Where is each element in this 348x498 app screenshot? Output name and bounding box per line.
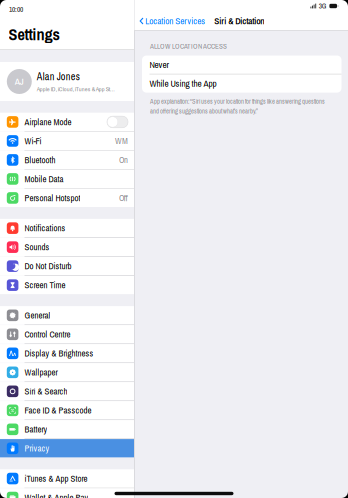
- staticText: Display & Brightness: [24, 347, 93, 359]
- button[interactable]: While Using the App: [142, 74, 341, 93]
- staticText: On: [119, 154, 128, 166]
- staticText: Sounds: [24, 241, 49, 253]
- button[interactable]: Face ID & Passcode: [0, 401, 134, 420]
- staticText: Face ID & Passcode: [24, 404, 91, 416]
- button[interactable]: Screen Time: [0, 276, 134, 294]
- staticText: Alan Jones: [37, 70, 80, 83]
- staticText: 10:00: [9, 5, 23, 14]
- staticText: Bluetooth: [24, 154, 55, 166]
- button[interactable]: iTunes & App Store: [0, 469, 134, 488]
- staticText: Apple ID, iCloud, iTunes & App St…: [37, 85, 115, 93]
- button[interactable]: Wallpaper: [0, 363, 134, 382]
- staticText: Siri & Search: [24, 385, 67, 397]
- button[interactable]: AJ: [0, 62, 134, 101]
- button[interactable]: Mobile Data: [0, 170, 134, 188]
- staticText: 3G: [319, 1, 327, 11]
- button[interactable]: Notifications: [0, 219, 134, 237]
- staticText: ALLOW LOCATION ACCESS: [150, 41, 227, 51]
- button[interactable]: Sounds: [0, 238, 134, 256]
- staticText: Airplane Mode: [24, 116, 71, 128]
- staticText: Location Services: [145, 15, 205, 27]
- button[interactable]: Battery: [0, 420, 134, 439]
- staticText: Privacy: [24, 442, 49, 454]
- staticText: Screen Time: [24, 279, 65, 291]
- button[interactable]: Location Services: [134, 13, 205, 29]
- staticText: Mobile Data: [24, 173, 63, 185]
- staticText: Wi-Fi: [24, 135, 41, 147]
- staticText: Notifications: [24, 222, 65, 234]
- button[interactable]: Do Not Disturb: [0, 257, 134, 275]
- button[interactable]: Siri & Search: [0, 382, 134, 401]
- staticText: Do Not Disturb: [24, 260, 71, 272]
- button[interactable]: General: [0, 306, 134, 325]
- staticText: Off: [119, 192, 128, 204]
- button[interactable]: Control Centre: [0, 325, 134, 344]
- staticText: iTunes & App Store: [24, 473, 87, 484]
- staticText: and offering suggestions about what’s ne…: [150, 107, 258, 115]
- staticText: Battery: [24, 423, 47, 435]
- button[interactable]: Display & Brightness: [0, 344, 134, 363]
- staticText: Control Centre: [24, 328, 70, 340]
- staticText: Settings: [8, 23, 59, 45]
- staticText: AJ: [15, 75, 24, 88]
- staticText: Personal Hotspot: [24, 192, 80, 204]
- staticText: App explanation: “Siri uses your locatio…: [150, 97, 325, 106]
- button[interactable]: Bluetooth: [0, 151, 134, 169]
- button[interactable]: Wallet & Apple Pay: [0, 488, 134, 498]
- staticText: While Using the App: [149, 77, 216, 90]
- staticText: Siri & Dictation: [214, 15, 264, 27]
- button[interactable]: Wi-Fi: [0, 132, 134, 150]
- staticText: Wallet & Apple Pay: [24, 492, 88, 498]
- button[interactable]: Privacy: [0, 439, 134, 458]
- staticText: General: [24, 309, 50, 321]
- staticText: Never: [149, 58, 169, 71]
- button[interactable]: Airplane Mode: [0, 113, 134, 131]
- button[interactable]: Personal Hotspot: [0, 189, 134, 207]
- staticText: WM: [115, 135, 128, 147]
- staticText: Wallpaper: [24, 366, 57, 378]
- button[interactable]: Never: [142, 55, 341, 74]
